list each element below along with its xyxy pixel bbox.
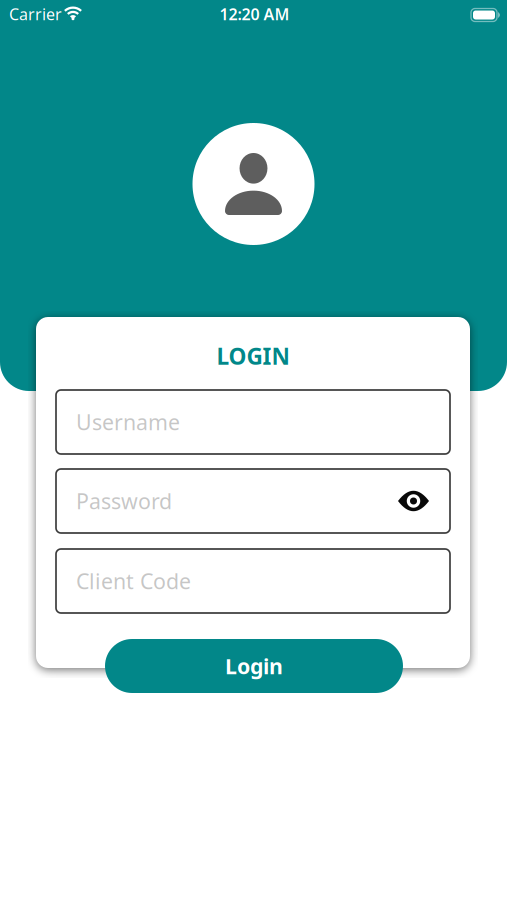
staticText: Carrier	[9, 3, 62, 25]
staticText: LOGIN	[216, 341, 289, 371]
staticText: Password	[76, 487, 172, 515]
button[interactable]: Show password	[391, 479, 435, 523]
staticText: Client Code	[76, 567, 191, 595]
staticText: Login	[225, 652, 283, 680]
button[interactable]: Password	[56, 469, 450, 533]
button[interactable]: Username	[56, 390, 450, 454]
staticText: Username	[76, 408, 180, 436]
button[interactable]: Login	[105, 639, 403, 693]
staticText: 12:20 AM	[219, 3, 289, 25]
button[interactable]: Client Code	[56, 549, 450, 613]
